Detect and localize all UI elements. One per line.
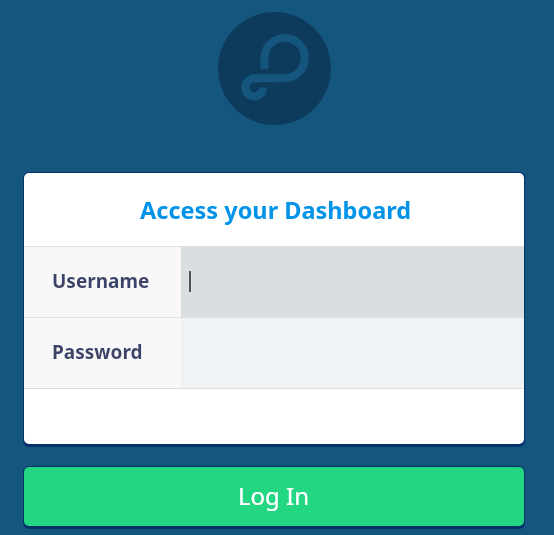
staticText: Access your Dashboard	[140, 194, 412, 226]
staticText: Log In	[238, 479, 310, 512]
staticText: Password	[52, 339, 143, 365]
other: App logo	[218, 12, 331, 125]
staticText: Username	[52, 268, 150, 294]
button[interactable]	[181, 246, 524, 317]
button[interactable]: Log In	[0, 466, 548, 529]
